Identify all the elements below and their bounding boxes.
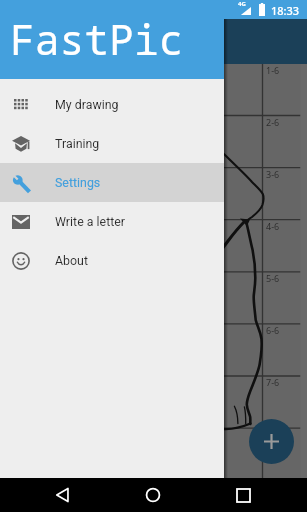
staticText: 5-6: [266, 272, 280, 284]
button[interactable]: Recent apps: [225, 478, 261, 512]
staticText: 18:33: [271, 3, 300, 18]
staticText: 2-6: [266, 116, 280, 128]
button[interactable]: Write a letter: [0, 202, 224, 241]
staticText: 7-6: [266, 376, 280, 388]
staticText: Training: [55, 136, 100, 151]
button[interactable]: Settings: [0, 163, 224, 202]
staticText: My drawing: [55, 97, 119, 112]
staticText: Settings: [55, 175, 101, 190]
staticText: FastPic: [10, 11, 184, 67]
staticText: 4-6: [266, 220, 280, 232]
staticText: 8-6: [266, 428, 280, 440]
staticText: About: [55, 253, 88, 268]
button[interactable]: About: [0, 241, 224, 280]
staticText: 3-6: [266, 168, 280, 180]
button[interactable]: Training: [0, 124, 224, 163]
staticText: 6-6: [266, 324, 280, 336]
button[interactable]: My drawing: [0, 85, 224, 124]
button[interactable]: Back: [44, 478, 80, 512]
button[interactable]: Home: [135, 478, 171, 512]
staticText: Write a letter: [55, 214, 126, 229]
button[interactable]: Add: [249, 419, 294, 464]
staticText: 1-6: [266, 64, 280, 76]
staticText: 4G: [238, 0, 246, 8]
